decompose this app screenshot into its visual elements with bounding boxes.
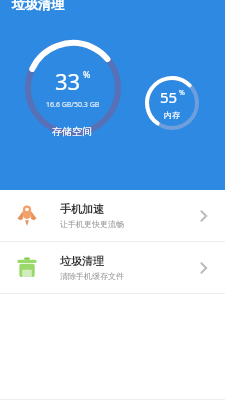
staticText: 16.6 GB/50.3 GB — [46, 100, 100, 110]
staticText: 55 — [160, 87, 178, 107]
staticText: 内存 — [164, 110, 180, 120]
button[interactable]: 手机加速 — [0, 190, 225, 241]
staticText: 存储空间 — [52, 125, 92, 138]
staticText: 让手机更快更流畅 — [60, 219, 124, 229]
staticText: % — [83, 68, 91, 80]
staticText: % — [179, 88, 185, 98]
staticText: 手机加速 — [60, 202, 104, 216]
staticText: 垃圾清理 — [60, 254, 104, 268]
button[interactable]: 垃圾清理 — [0, 242, 225, 293]
staticText: 垃圾清理 — [12, 0, 64, 12]
staticText: 33 — [55, 66, 81, 96]
staticText: 清除手机缓存文件 — [60, 271, 124, 281]
